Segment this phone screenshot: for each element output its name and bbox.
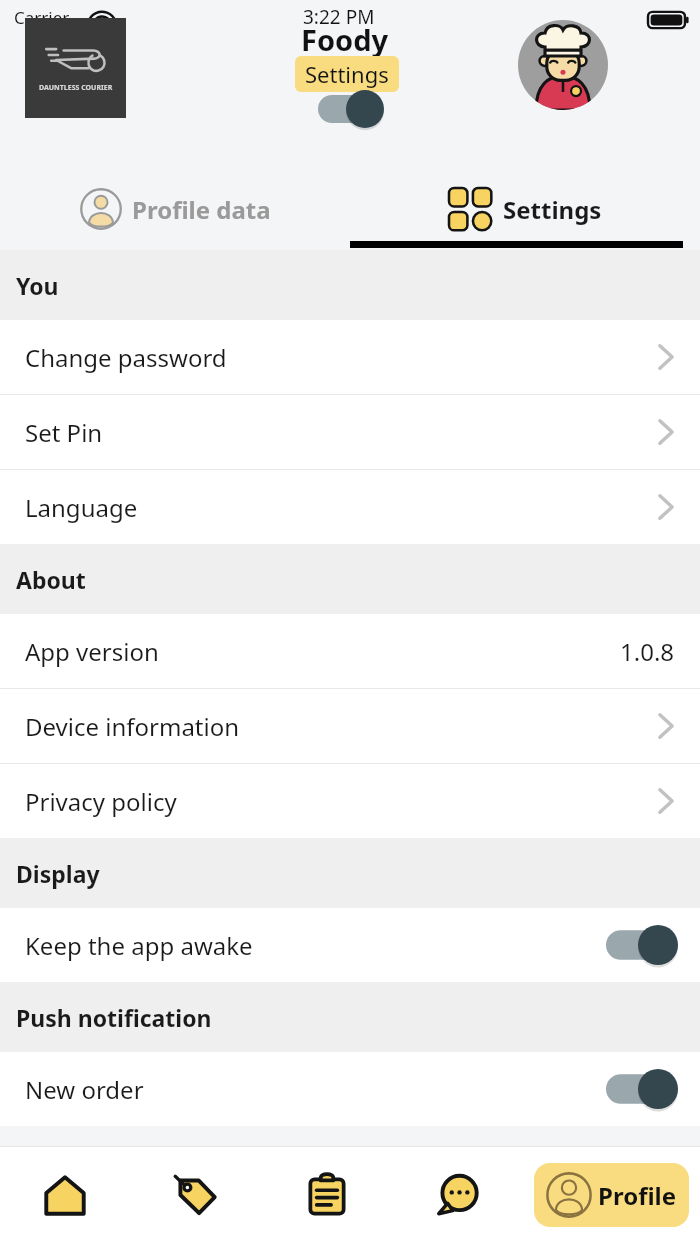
button[interactable]: DAUNTLESS COURIER (25, 18, 126, 118)
button[interactable]: Change password (0, 320, 700, 394)
button[interactable]: Profile (534, 1163, 689, 1227)
staticText: Keep the app awake (25, 929, 606, 962)
button[interactable]: Keep the app awake (0, 908, 700, 982)
staticText: Push notification (16, 1002, 212, 1033)
staticText: Privacy policy (25, 785, 658, 818)
staticText: 3:22 PM (303, 4, 375, 30)
staticText: Carrier (14, 6, 70, 29)
staticText: Language (25, 491, 658, 524)
staticText: Profile (598, 1179, 677, 1212)
staticText: 1.0.8 (620, 635, 675, 668)
button[interactable]: Toggle (606, 925, 678, 965)
button[interactable]: Language (0, 470, 700, 544)
button[interactable]: Set Pin (0, 395, 700, 469)
button[interactable]: App version (0, 614, 700, 688)
button[interactable]: Chat (392, 1146, 523, 1244)
staticText: Settings (503, 193, 602, 226)
staticText: Display (16, 858, 100, 889)
button[interactable]: Toggle (318, 90, 384, 128)
button[interactable]: New order (0, 1052, 700, 1126)
button[interactable]: Privacy policy (0, 764, 700, 838)
staticText: Device information (25, 710, 658, 743)
button[interactable]: Profile data (0, 170, 350, 248)
button[interactable]: Offers (130, 1146, 261, 1244)
staticText: Foody (301, 20, 389, 59)
button[interactable]: Orders (261, 1146, 392, 1244)
staticText: Set Pin (25, 416, 658, 449)
staticText: Profile data (132, 193, 271, 226)
staticText: App version (25, 635, 620, 668)
button[interactable]: Toggle (606, 1069, 678, 1109)
staticText: You (16, 270, 59, 301)
button[interactable]: Home (0, 1146, 130, 1244)
button[interactable]: Profile avatar (518, 20, 608, 110)
staticText: DAUNTLESS COURIER (39, 83, 113, 93)
button[interactable]: Settings (295, 56, 399, 92)
staticText: About (16, 564, 86, 595)
staticText: New order (25, 1073, 606, 1106)
button[interactable]: Device information (0, 689, 700, 763)
button[interactable]: Settings (350, 170, 700, 248)
staticText: Change password (25, 341, 658, 374)
staticText: Settings (305, 59, 389, 89)
